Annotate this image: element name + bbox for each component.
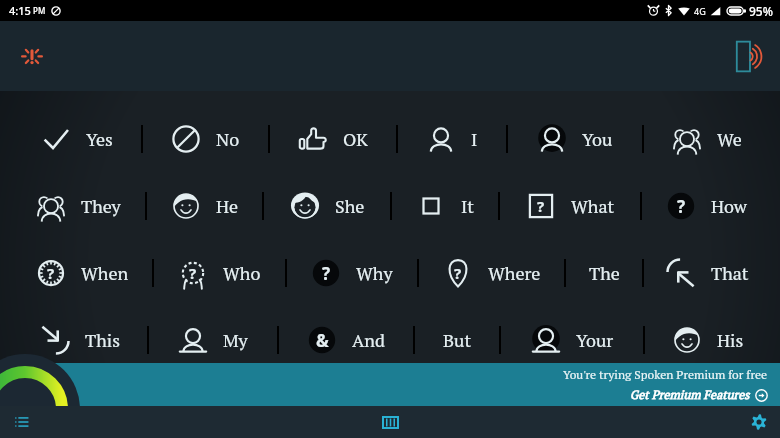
staticText: Who bbox=[223, 261, 261, 285]
button[interactable]: Your bbox=[499, 306, 643, 373]
button[interactable]: She bbox=[262, 172, 390, 239]
staticText: What bbox=[571, 194, 615, 218]
button[interactable]: Get Premium Features bbox=[630, 387, 768, 403]
button[interactable]: Phrase list bbox=[8, 408, 36, 436]
button[interactable]: No bbox=[141, 105, 268, 172]
button[interactable]: ? bbox=[498, 172, 640, 239]
staticText: That bbox=[711, 261, 749, 285]
staticText: But bbox=[443, 328, 472, 352]
staticText: Why bbox=[356, 261, 393, 285]
staticText: How bbox=[711, 194, 747, 218]
staticText: ? bbox=[47, 263, 55, 283]
button[interactable]: I bbox=[396, 105, 506, 172]
staticText: ? bbox=[537, 196, 545, 216]
staticText: Get Premium Features bbox=[630, 387, 750, 403]
staticText: Where bbox=[488, 261, 541, 285]
button[interactable]: ? bbox=[152, 239, 285, 306]
staticText: Your bbox=[576, 328, 614, 352]
staticText: 95% bbox=[749, 3, 773, 19]
staticText: It bbox=[461, 194, 475, 218]
staticText: No bbox=[216, 127, 240, 151]
button[interactable]: It bbox=[390, 172, 498, 239]
button[interactable]: Settings bbox=[745, 408, 773, 436]
button[interactable]: ? bbox=[0, 239, 152, 306]
button[interactable]: They bbox=[0, 172, 145, 239]
button[interactable]: The bbox=[564, 239, 642, 306]
staticText: You bbox=[582, 127, 613, 151]
staticText: You're trying Spoken Premium for free bbox=[563, 367, 768, 383]
staticText: She bbox=[335, 194, 365, 218]
staticText: This bbox=[85, 328, 120, 352]
staticText: His bbox=[717, 328, 744, 352]
staticText: 4:15 bbox=[9, 3, 31, 18]
button[interactable]: You bbox=[506, 105, 642, 172]
staticText: The bbox=[589, 261, 620, 285]
staticText: They bbox=[81, 194, 121, 218]
staticText: PM bbox=[33, 5, 46, 16]
staticText: And bbox=[352, 328, 385, 352]
button[interactable]: Yes bbox=[0, 105, 141, 172]
button[interactable]: Alert bbox=[13, 37, 51, 75]
button[interactable]: His bbox=[643, 306, 780, 373]
staticText: We bbox=[717, 127, 742, 151]
staticText: My bbox=[223, 328, 248, 352]
button[interactable]: But bbox=[413, 306, 499, 373]
staticText: When bbox=[81, 261, 129, 285]
button[interactable]: ? bbox=[285, 239, 417, 306]
button[interactable]: This bbox=[0, 306, 147, 373]
staticText: I bbox=[471, 127, 478, 151]
staticText: ? bbox=[322, 262, 331, 285]
button[interactable]: He bbox=[145, 172, 262, 239]
staticText: ? bbox=[189, 263, 197, 283]
button[interactable]: ? bbox=[417, 239, 564, 306]
button[interactable]: Speak aloud bbox=[728, 36, 768, 76]
button[interactable]: That bbox=[642, 239, 780, 306]
staticText: & bbox=[316, 329, 329, 352]
button[interactable]: We bbox=[642, 105, 780, 172]
button[interactable]: My bbox=[147, 306, 277, 373]
button[interactable]: Keyboard bbox=[376, 408, 404, 436]
staticText: 4G bbox=[694, 5, 706, 17]
button[interactable]: OK bbox=[268, 105, 396, 172]
staticText: ? bbox=[454, 263, 462, 283]
button[interactable]: & bbox=[277, 306, 413, 373]
staticText: He bbox=[216, 194, 239, 218]
staticText: OK bbox=[343, 127, 368, 151]
staticText: Yes bbox=[86, 127, 113, 151]
staticText: ? bbox=[677, 195, 686, 218]
button[interactable]: ? bbox=[640, 172, 780, 239]
